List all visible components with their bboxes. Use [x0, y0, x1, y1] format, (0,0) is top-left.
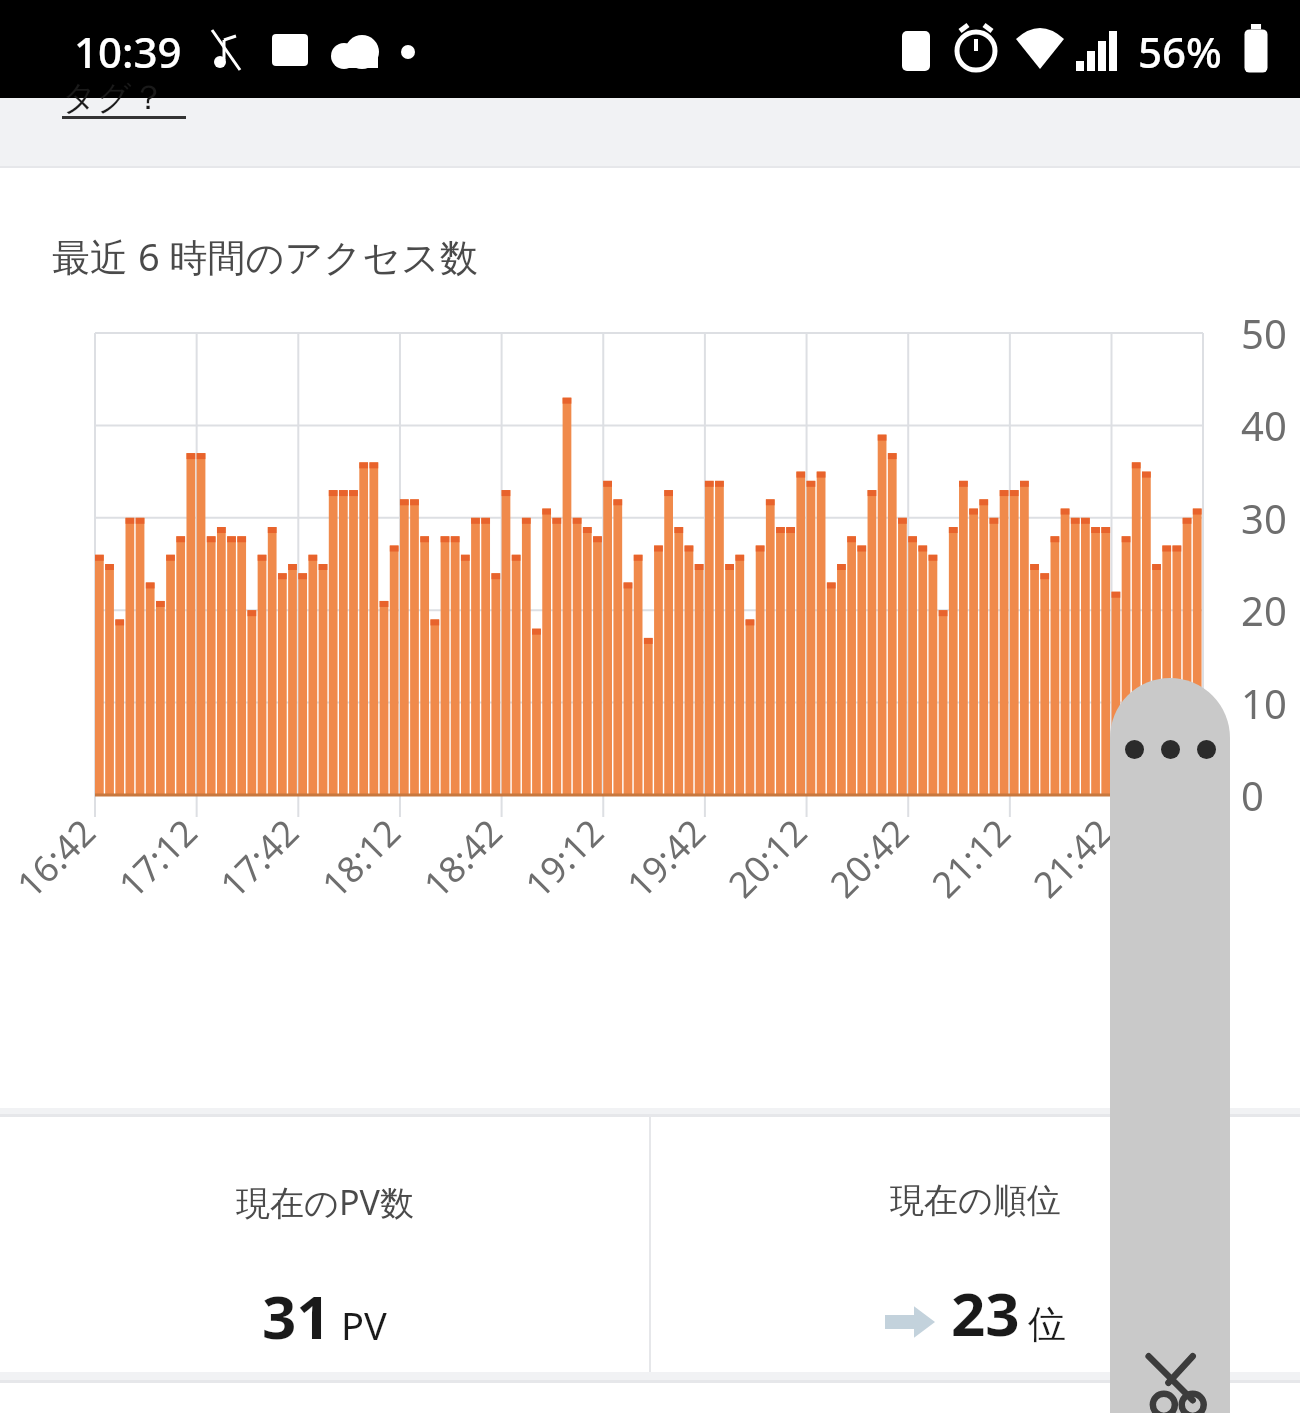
staticText: 31 — [262, 1275, 331, 1357]
staticText: 23 — [951, 1272, 1020, 1354]
staticText: 現在の順位 — [890, 1179, 1061, 1222]
staticText: 現在のPV数 — [236, 1179, 414, 1225]
button[interactable]: More options panel — [1110, 678, 1230, 1413]
button[interactable]: 6 時間以内にアクセスした人 — [0, 1383, 1300, 1413]
staticText: 56% — [1138, 23, 1222, 80]
staticText: PV — [341, 1299, 387, 1351]
button[interactable]: 現在の順位 — [651, 1117, 1300, 1354]
other: Rank unchanged — [885, 1300, 935, 1344]
button[interactable]: タグ？ — [62, 76, 166, 119]
staticText: タグ？ — [62, 76, 166, 119]
button[interactable]: 現在のPV数 — [0, 1117, 649, 1357]
staticText: 最近 6 時間のアクセス数 — [52, 230, 478, 282]
other: Cut — [1138, 1341, 1214, 1413]
staticText: 10:39 — [74, 23, 182, 80]
staticText: 位 — [1028, 1300, 1066, 1348]
